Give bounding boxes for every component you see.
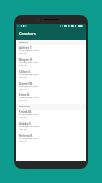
staticText: b.rya@mail.com — [19, 60, 38, 63]
staticText: Erica B. — [19, 93, 30, 97]
button[interactable]: Ashley T. — [16, 45, 86, 57]
button[interactable]: Helena R. — [16, 133, 86, 145]
staticText: e.ban@mail.com — [19, 95, 39, 98]
staticText: Ashley T. — [19, 46, 33, 50]
staticText: +67 12 — [19, 98, 27, 101]
staticText: c.smi@mail.com — [19, 72, 39, 75]
staticText: Gabby E. — [19, 122, 32, 126]
staticText: +67 12 — [19, 139, 27, 142]
staticText: h.ros@mail.com — [19, 136, 38, 139]
staticText: +67 12 — [19, 63, 27, 66]
staticText: +67 12 — [19, 75, 27, 78]
button[interactable]: Chloe S. — [16, 69, 86, 81]
staticText: Blayne R. — [19, 58, 33, 62]
staticText: a.tom@mail.com — [19, 48, 39, 51]
staticText: Creators — [19, 31, 36, 37]
staticText: RECENT — [19, 41, 28, 44]
staticText: d.wu@mail.com — [19, 84, 38, 87]
staticText: +67 12 — [19, 87, 27, 90]
button[interactable]: Daniel W. — [16, 81, 86, 93]
staticText: +67 12 — [19, 51, 27, 54]
staticText: +67 12 — [19, 115, 27, 118]
button[interactable]: Erica B. — [16, 92, 86, 104]
button[interactable]: Gabby E. — [16, 121, 86, 133]
staticText: Daniel W. — [19, 82, 33, 86]
button[interactable]: Blayne R. — [16, 57, 86, 69]
button[interactable]: Frank M. — [16, 109, 86, 121]
staticText: g.edw@mail.com — [19, 124, 40, 127]
staticText: POPULAR — [19, 105, 30, 108]
staticText: f.mas@mail.com — [19, 112, 39, 115]
staticText: +67 12 — [19, 127, 27, 130]
staticText: Chloe S. — [19, 70, 31, 74]
staticText: Helena R. — [19, 134, 34, 138]
staticText: Frank M. — [19, 110, 32, 114]
